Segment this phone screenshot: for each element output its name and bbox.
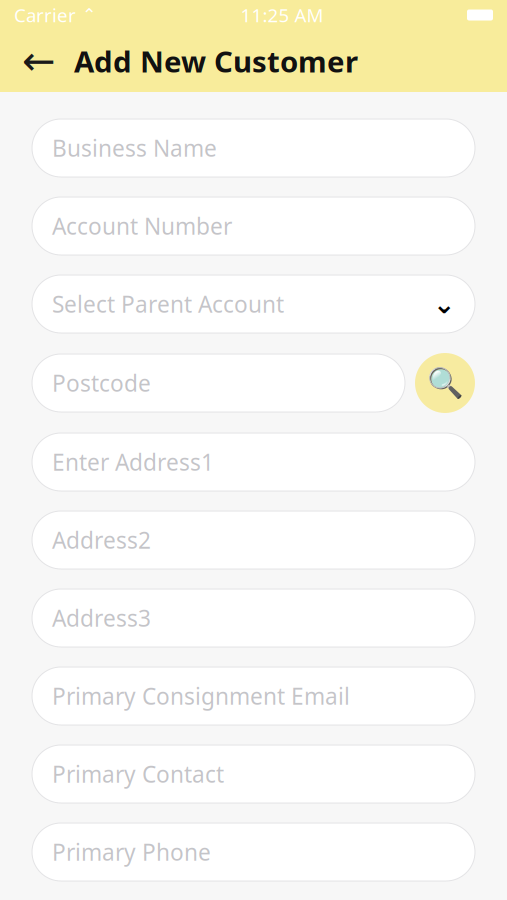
staticText: ⌃: [76, 5, 97, 25]
button[interactable]: Search postcode: [415, 353, 475, 413]
staticText: 11:25 AM: [240, 3, 323, 27]
staticText: Address3: [52, 603, 151, 633]
staticText: Primary Contact: [52, 759, 224, 789]
button[interactable]: Account Number: [32, 197, 475, 255]
staticText: Primary Consignment Email: [52, 681, 350, 711]
staticText: Postcode: [52, 368, 151, 398]
button[interactable]: Address2: [32, 511, 475, 569]
staticText: Account Number: [52, 211, 232, 241]
button[interactable]: Select Parent Account: [32, 275, 475, 333]
button[interactable]: Enter Address1: [32, 433, 475, 491]
button[interactable]: Back: [12, 34, 66, 88]
staticText: Business Name: [52, 133, 217, 163]
staticText: Primary Phone: [52, 837, 211, 867]
button[interactable]: Primary Consignment Email: [32, 667, 475, 725]
button[interactable]: Primary Phone: [32, 823, 475, 881]
button[interactable]: Business Name: [32, 119, 475, 177]
button[interactable]: Postcode: [32, 354, 405, 412]
button[interactable]: Primary Contact: [32, 745, 475, 803]
staticText: Select Parent Account: [52, 289, 284, 319]
staticText: Add New Customer: [74, 41, 358, 80]
staticText: Enter Address1: [52, 447, 214, 477]
staticText: Carrier: [14, 3, 76, 27]
button[interactable]: Address3: [32, 589, 475, 647]
staticText: ←: [22, 38, 56, 84]
staticText: ⌄: [433, 289, 455, 319]
staticText: 🔍: [426, 366, 463, 400]
staticText: Address2: [52, 525, 151, 555]
